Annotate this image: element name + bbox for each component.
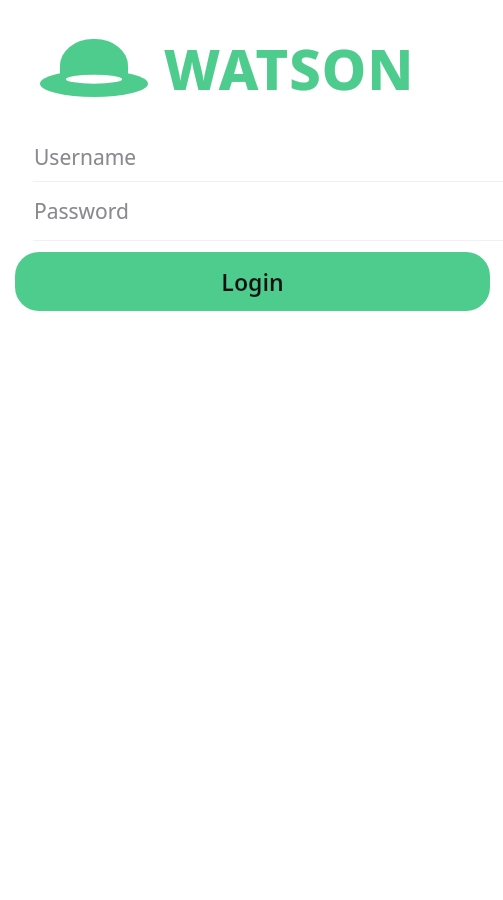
staticText: Password <box>34 197 129 226</box>
button[interactable]: Username <box>0 134 503 181</box>
button[interactable]: Login <box>15 252 490 311</box>
other: Watson logo <box>40 39 148 97</box>
button[interactable]: Password <box>0 182 503 240</box>
staticText: Login <box>221 266 284 297</box>
staticText: Username <box>34 143 137 172</box>
staticText: WATSON <box>164 30 415 106</box>
